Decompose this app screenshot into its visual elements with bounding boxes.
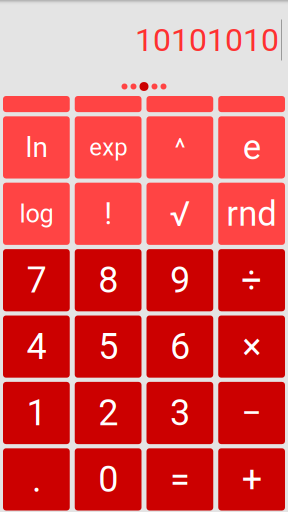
button[interactable]: ^ (146, 116, 213, 178)
staticText: + (242, 458, 262, 500)
staticText: 9 (170, 259, 190, 301)
staticText: 6 (170, 325, 190, 368)
button[interactable]: . (3, 448, 70, 510)
button[interactable]: 1 (3, 382, 70, 444)
button[interactable] (218, 96, 285, 112)
button[interactable]: ln (3, 116, 70, 178)
staticText: 5 (98, 325, 118, 368)
button[interactable] (75, 96, 142, 112)
button[interactable]: × (218, 315, 285, 378)
button[interactable]: e (218, 116, 285, 178)
staticText: rnd (226, 193, 277, 234)
button[interactable]: 4 (3, 315, 70, 378)
button[interactable]: − (218, 382, 285, 444)
staticText: 7 (26, 259, 46, 301)
button[interactable]: 3 (146, 382, 213, 444)
staticText: √ (169, 193, 190, 234)
staticText: = (170, 458, 190, 500)
staticText: 10101010 (135, 21, 279, 59)
staticText: . (32, 458, 41, 500)
staticText: 8 (98, 259, 118, 301)
staticText: ^ (174, 132, 185, 163)
button[interactable]: rnd (218, 183, 285, 245)
button[interactable]: 0 (75, 448, 142, 510)
button[interactable]: exp (75, 116, 142, 178)
staticText: × (242, 325, 261, 368)
staticText: ! (104, 196, 112, 232)
button[interactable]: 5 (75, 315, 142, 378)
button[interactable]: 6 (146, 315, 213, 378)
button[interactable] (146, 96, 213, 112)
staticText: exp (89, 133, 127, 161)
staticText: e (243, 127, 261, 168)
button[interactable]: ! (75, 183, 142, 245)
button[interactable] (3, 96, 70, 112)
button[interactable]: = (146, 448, 213, 510)
button[interactable]: 7 (3, 249, 70, 311)
button[interactable]: 9 (146, 249, 213, 311)
staticText: 3 (170, 392, 190, 434)
staticText: 0 (98, 458, 118, 500)
button[interactable]: + (218, 448, 285, 510)
button[interactable]: 8 (75, 249, 142, 311)
staticText: 1 (26, 392, 46, 434)
button[interactable]: ÷ (218, 249, 285, 311)
staticText: − (241, 392, 262, 434)
button[interactable]: 2 (75, 382, 142, 444)
staticText: ln (25, 131, 47, 164)
staticText: log (19, 199, 53, 229)
staticText: ÷ (241, 259, 262, 301)
staticText: 4 (26, 325, 46, 368)
button[interactable]: log (3, 183, 70, 245)
staticText: 2 (98, 392, 118, 434)
button[interactable]: √ (146, 183, 213, 245)
